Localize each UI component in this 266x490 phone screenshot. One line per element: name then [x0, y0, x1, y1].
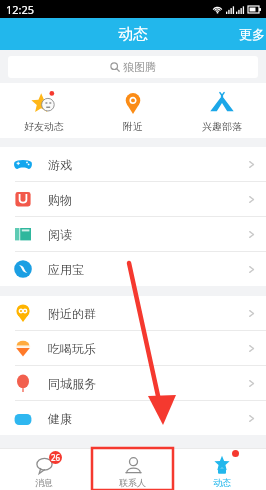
button[interactable]: 吃喝玩乐	[0, 331, 266, 365]
staticText: 吃喝玩乐	[48, 341, 96, 356]
staticText: 消息	[35, 477, 53, 488]
button[interactable]: 联系人	[88, 448, 177, 490]
button[interactable]: 同城服务	[0, 366, 266, 400]
button[interactable]: 狼图腾	[8, 56, 258, 78]
staticText: 游戏	[48, 157, 72, 172]
button[interactable]: 购物	[0, 182, 266, 216]
button[interactable]: 附近的群	[0, 296, 266, 330]
button[interactable]: 兴趣部落	[177, 83, 266, 138]
button[interactable]: 游戏	[0, 147, 266, 181]
button[interactable]: 更多	[239, 26, 266, 42]
button[interactable]: 健康	[0, 401, 266, 435]
button[interactable]: 附近	[88, 83, 177, 138]
button[interactable]: 应用宝	[0, 252, 266, 286]
button[interactable]: 动态	[177, 448, 266, 490]
staticText: 好友动态	[24, 120, 64, 133]
staticText: 26	[51, 452, 61, 463]
staticText: 狼图腾	[123, 60, 156, 74]
staticText: 12:25	[6, 2, 35, 17]
staticText: 应用宝	[48, 262, 84, 277]
staticText: 附近	[123, 120, 143, 133]
button[interactable]: 阅读	[0, 217, 266, 251]
staticText: 动态	[118, 25, 148, 44]
staticText: 购物	[48, 192, 72, 207]
button[interactable]: 好友动态	[0, 83, 88, 138]
staticText: 阅读	[48, 227, 72, 242]
staticText: 同城服务	[48, 376, 96, 391]
staticText: 兴趣部落	[202, 120, 242, 133]
staticText: 健康	[48, 411, 72, 426]
button[interactable]: 26	[0, 448, 88, 490]
staticText: 联系人	[119, 477, 146, 488]
staticText: 附近的群	[48, 306, 96, 321]
staticText: 动态	[213, 477, 231, 488]
